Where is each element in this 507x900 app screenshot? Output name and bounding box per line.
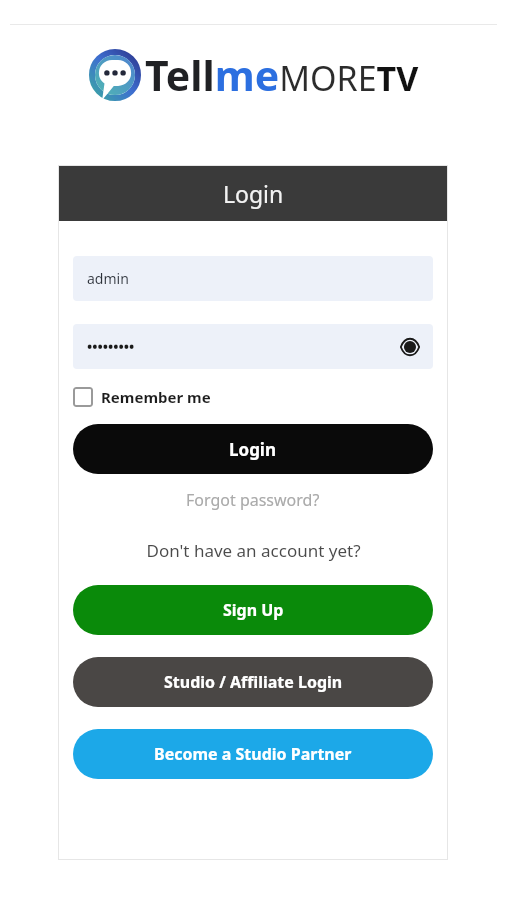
- button[interactable]: admin: [73, 256, 433, 301]
- staticText: Login: [223, 178, 284, 209]
- button[interactable]: Remember me: [73, 387, 211, 407]
- staticText: TellmeMORETV: [145, 47, 419, 103]
- staticText: Remember me: [101, 387, 211, 407]
- button[interactable]: Become a Studio Partner: [73, 729, 433, 779]
- staticText: Studio / Affiliate Login: [164, 671, 343, 693]
- button[interactable]: Studio / Affiliate Login: [73, 657, 433, 707]
- staticText: •••••••••: [87, 337, 135, 356]
- staticText: Sign Up: [223, 599, 284, 621]
- button[interactable]: Login: [73, 424, 433, 474]
- staticText: Login: [229, 438, 277, 461]
- button[interactable]: •••••••••: [73, 324, 433, 369]
- staticText: Become a Studio Partner: [154, 743, 352, 765]
- button[interactable]: Forgot password?: [73, 489, 433, 511]
- staticText: Forgot password?: [186, 489, 320, 511]
- staticText: admin: [87, 269, 129, 288]
- button[interactable]: Show password: [397, 334, 423, 360]
- staticText: Don't have an account yet?: [146, 539, 361, 562]
- button[interactable]: Sign Up: [73, 585, 433, 635]
